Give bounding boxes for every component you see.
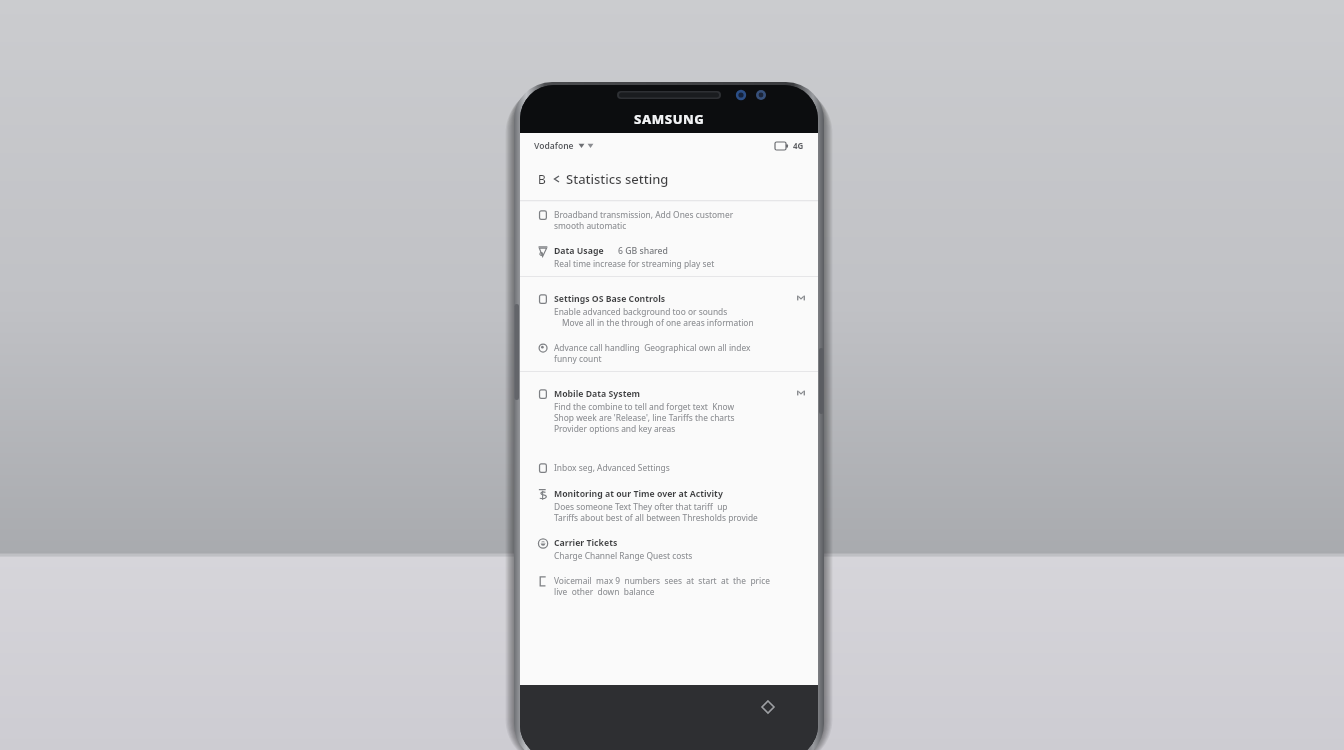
staticText: Monitoring at our Time over at Activity (554, 488, 723, 500)
staticText: Data Usage (554, 245, 604, 257)
staticText: Move all in the through of one areas inf… (562, 317, 754, 328)
staticText: Provider options and key areas (554, 423, 676, 434)
button[interactable]: Inbox seg, Advanced Settings (520, 455, 818, 481)
staticText: Broadband transmission, Add Ones custome… (554, 209, 734, 220)
staticText: smooth automatic (554, 220, 627, 231)
button[interactable]: Back (533, 170, 551, 188)
staticText: Settings OS Base Controls (554, 293, 666, 305)
staticText: Tariffs about best of all between Thresh… (554, 512, 758, 523)
staticText: Carrier Tickets (554, 537, 618, 549)
staticText: 6 GB shared (618, 245, 668, 257)
staticText: Mobile Data System (554, 388, 641, 400)
button[interactable]: Advance call handling Geographical own a… (520, 335, 818, 371)
button[interactable]: Carrier Tickets (520, 530, 818, 568)
staticText: SAMSUNG (634, 110, 705, 128)
staticText: Find the combine to tell and forget text… (554, 401, 735, 412)
staticText: live other down balance (554, 586, 655, 597)
button[interactable]: Settings OS Base Controls (520, 286, 818, 335)
button[interactable]: Data Usage (520, 238, 818, 276)
button[interactable]: Voicemail max 9 numbers sees at start at… (520, 568, 818, 604)
button[interactable]: Broadband transmission, Add Ones custome… (520, 202, 818, 238)
staticText: Voicemail max 9 numbers sees at start at… (554, 575, 770, 586)
staticText: Real time increase for streaming play se… (554, 258, 715, 269)
staticText: B (538, 171, 546, 187)
staticText: Statistics setting (566, 170, 669, 188)
button[interactable]: Mobile Data System (520, 381, 818, 441)
staticText: Shop week are 'Release', line Tariffs th… (554, 412, 735, 423)
button[interactable]: Monitoring at our Time over at Activity (520, 481, 818, 530)
staticText: Advance call handling Geographical own a… (554, 342, 751, 353)
staticText: Enable advanced background too or sounds (554, 306, 728, 317)
staticText: Inbox seg, Advanced Settings (554, 462, 670, 473)
staticText: Charge Channel Range Quest costs (554, 550, 693, 561)
staticText: funny count (554, 353, 602, 364)
other: Recents (762, 701, 774, 713)
staticText: Does someone Text They ofter that tariff… (554, 501, 728, 512)
staticText: 4G (793, 140, 804, 151)
staticText: Vodafone (534, 140, 574, 152)
